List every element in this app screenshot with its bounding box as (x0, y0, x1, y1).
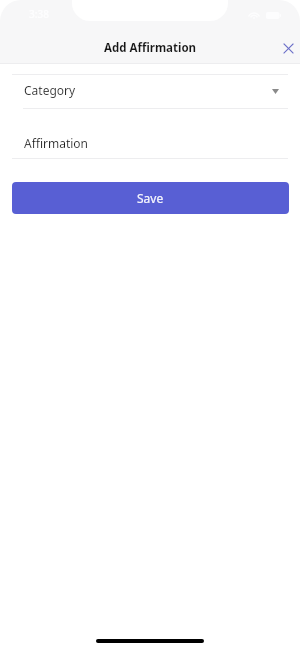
button[interactable]: Category (0, 75, 300, 108)
staticText: Affirmation (24, 135, 89, 151)
staticText: Add Affirmation (104, 40, 197, 56)
button[interactable]: Close (272, 32, 300, 64)
staticText: Category (24, 82, 76, 98)
staticText: Save (137, 190, 164, 206)
button[interactable]: Save (12, 182, 289, 214)
button[interactable]: Affirmation (0, 126, 300, 159)
